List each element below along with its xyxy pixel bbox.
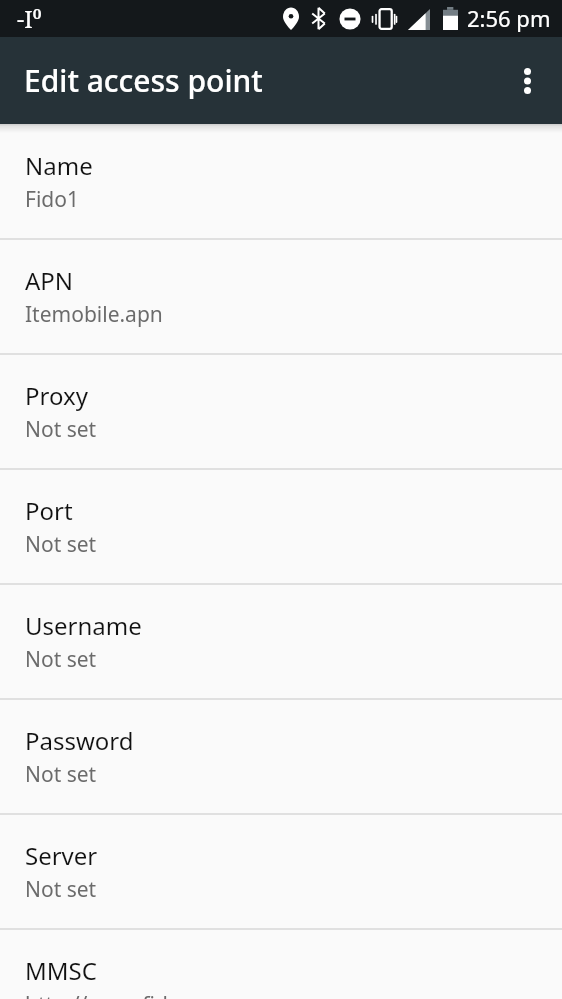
staticText: Not set <box>25 530 97 559</box>
staticText: Edit access point <box>24 60 263 101</box>
staticText: Port <box>25 494 73 527</box>
button[interactable]: Port <box>0 469 562 584</box>
button[interactable]: More options <box>498 52 556 110</box>
staticText: Password <box>25 724 134 757</box>
staticText: Not set <box>25 760 97 789</box>
button[interactable]: APN <box>0 239 562 354</box>
staticText: Name <box>25 149 93 182</box>
staticText: 2:56 pm <box>467 3 551 33</box>
staticText: MMSC <box>25 954 97 987</box>
staticText: APN <box>25 264 74 297</box>
button[interactable]: Name <box>0 124 562 239</box>
button[interactable]: Username <box>0 584 562 699</box>
staticText: Not set <box>25 645 97 674</box>
staticText: Username <box>25 609 142 642</box>
staticText: Fido1 <box>25 185 79 214</box>
staticText: Not set <box>25 875 97 904</box>
button[interactable]: MMSC <box>0 929 562 999</box>
staticText: -I⁰ <box>17 3 42 34</box>
staticText: http://mms.fido.ca <box>25 990 209 999</box>
button[interactable]: Proxy <box>0 354 562 469</box>
button[interactable]: Password <box>0 699 562 814</box>
staticText: Server <box>25 839 98 872</box>
staticText: Itemobile.apn <box>25 300 163 329</box>
staticText: Proxy <box>25 379 88 412</box>
button[interactable]: Server <box>0 814 562 929</box>
staticText: Not set <box>25 415 97 444</box>
